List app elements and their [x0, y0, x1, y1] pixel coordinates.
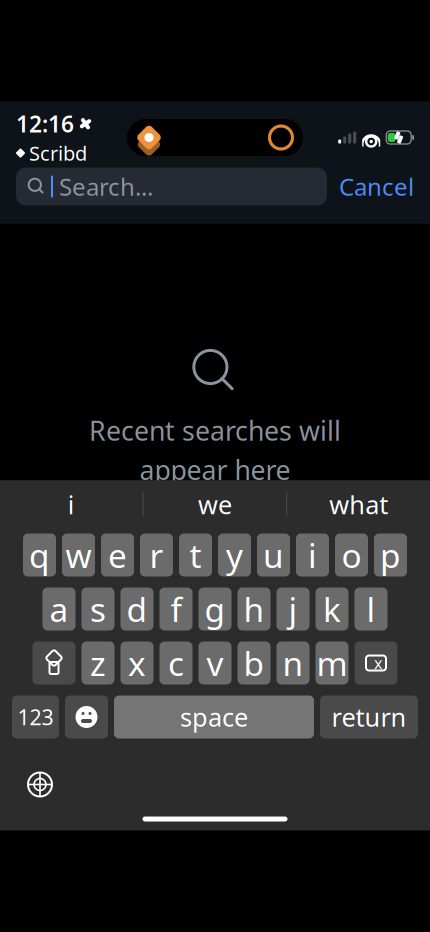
staticText: z: [90, 641, 106, 685]
button[interactable]: t: [179, 533, 212, 576]
staticText: t: [189, 533, 201, 577]
staticText: 123: [17, 703, 53, 731]
button[interactable]: Scribd: [16, 140, 87, 166]
staticText: Search...: [59, 171, 153, 202]
staticText: l: [366, 587, 375, 631]
button[interactable]: g: [198, 587, 231, 630]
staticText: m: [316, 641, 347, 685]
staticText: space: [180, 700, 248, 734]
staticText: c: [168, 641, 184, 685]
button[interactable]: Delete: [354, 641, 397, 684]
staticText: appear here: [139, 452, 290, 487]
button[interactable]: f: [159, 587, 192, 630]
button[interactable]: we: [144, 480, 286, 528]
staticText: b: [243, 641, 264, 685]
button[interactable]: o: [335, 533, 368, 576]
staticText: s: [90, 587, 106, 631]
button[interactable]: b: [237, 641, 270, 684]
button[interactable]: y: [218, 533, 251, 576]
button[interactable]: c: [159, 641, 192, 684]
button[interactable]: d: [120, 587, 153, 630]
button[interactable]: m: [315, 641, 348, 684]
staticText: x: [128, 641, 146, 685]
staticText: a: [49, 587, 68, 631]
button[interactable]: Shift: [32, 641, 75, 684]
button[interactable]: space: [114, 695, 314, 738]
button[interactable]: s: [81, 587, 114, 630]
button[interactable]: Next keyboard: [0, 770, 54, 798]
staticText: p: [380, 533, 401, 577]
button[interactable]: h: [237, 587, 270, 630]
button[interactable]: v: [198, 641, 231, 684]
button[interactable]: Emoji: [65, 695, 108, 738]
button[interactable]: w: [62, 533, 95, 576]
button[interactable]: i: [296, 533, 329, 576]
button[interactable]: Search...: [16, 167, 327, 205]
button[interactable]: Cancel: [339, 171, 414, 202]
button[interactable]: n: [276, 641, 309, 684]
button[interactable]: z: [81, 641, 114, 684]
staticText: Cancel: [339, 171, 414, 202]
button[interactable]: l: [354, 587, 387, 630]
staticText: n: [282, 641, 303, 685]
staticText: we: [198, 488, 232, 521]
button[interactable]: e: [101, 533, 134, 576]
staticText: x: [374, 652, 382, 674]
button[interactable]: i: [0, 480, 143, 528]
button[interactable]: j: [276, 587, 309, 630]
staticText: return: [331, 700, 406, 734]
staticText: d: [126, 587, 147, 631]
button[interactable]: q: [23, 533, 56, 576]
staticText: Recent searches will: [89, 413, 341, 448]
staticText: 12:16: [16, 109, 74, 139]
staticText: i: [68, 488, 75, 521]
staticText: g: [204, 587, 225, 631]
button[interactable]: what: [287, 480, 430, 528]
button[interactable]: u: [257, 533, 290, 576]
staticText: o: [341, 533, 361, 577]
staticText: w: [65, 533, 91, 577]
staticText: v: [206, 641, 223, 685]
staticText: j: [288, 587, 297, 631]
staticText: h: [243, 587, 264, 631]
button[interactable]: 123: [12, 695, 59, 738]
staticText: y: [226, 533, 243, 577]
staticText: k: [323, 587, 341, 631]
button[interactable]: r: [140, 533, 173, 576]
button[interactable]: a: [42, 587, 75, 630]
staticText: what: [329, 488, 388, 521]
staticText: f: [170, 587, 181, 631]
staticText: u: [263, 533, 284, 577]
staticText: i: [308, 533, 317, 577]
staticText: q: [29, 533, 50, 577]
button[interactable]: return: [320, 695, 418, 738]
button[interactable]: p: [374, 533, 407, 576]
staticText: Scribd: [29, 140, 87, 166]
button[interactable]: k: [315, 587, 348, 630]
button[interactable]: x: [120, 641, 153, 684]
staticText: e: [108, 533, 127, 577]
staticText: r: [149, 533, 163, 577]
